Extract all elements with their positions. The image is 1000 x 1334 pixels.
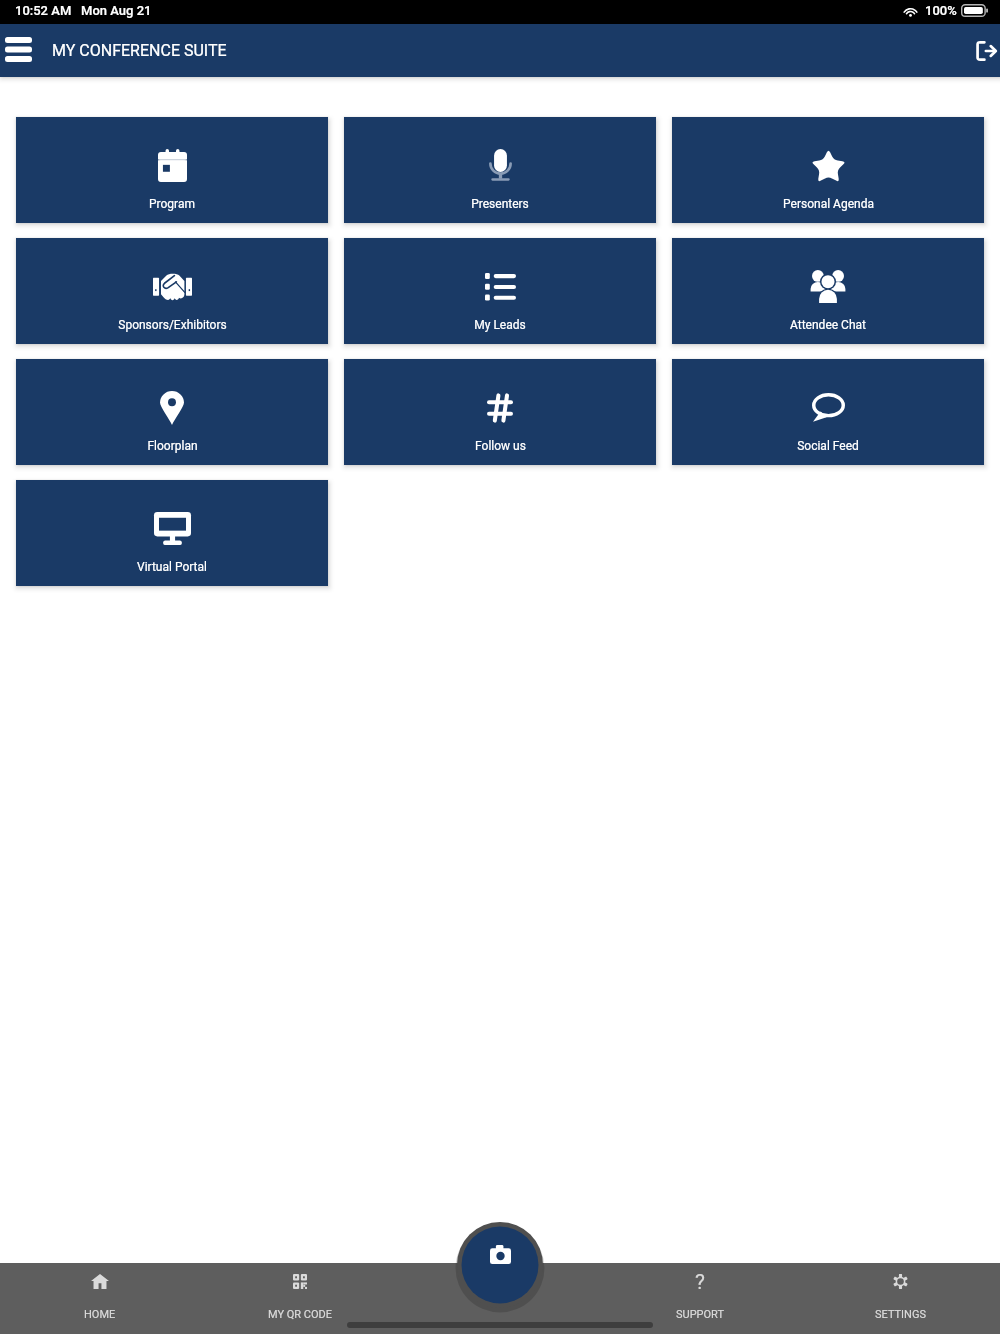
staticText: Virtual Portal: [137, 560, 207, 574]
staticText: 100%: [925, 3, 957, 18]
staticText: HOME: [84, 1308, 116, 1321]
staticText: Floorplan: [147, 439, 198, 453]
button[interactable]: Virtual Portal: [16, 480, 328, 586]
button[interactable]: Follow us: [344, 359, 656, 465]
button[interactable]: Floorplan: [16, 359, 328, 465]
staticText: Social Feed: [797, 439, 859, 453]
button[interactable]: HOME: [0, 1263, 200, 1334]
staticText: Presenters: [471, 197, 529, 211]
staticText: SETTINGS: [875, 1308, 926, 1321]
button[interactable]: SETTINGS: [800, 1263, 1000, 1334]
button[interactable]: Program: [16, 117, 328, 223]
button[interactable]: My Leads: [344, 238, 656, 344]
button[interactable]: MY QR CODE: [200, 1263, 400, 1334]
staticText: My Leads: [474, 318, 526, 332]
staticText: MY CONFERENCE SUITE: [52, 41, 227, 60]
staticText: 10:52 AM: [15, 3, 72, 18]
staticText: Sponsors/Exhibitors: [118, 318, 227, 332]
staticText: Attendee Chat: [790, 318, 866, 332]
button[interactable]: Attendee Chat: [672, 238, 984, 344]
staticText: Personal Agenda: [783, 197, 874, 211]
staticText: SUPPORT: [676, 1308, 725, 1321]
button[interactable]: Presenters: [344, 117, 656, 223]
staticText: MY QR CODE: [268, 1308, 333, 1321]
button[interactable]: Sponsors/Exhibitors: [16, 238, 328, 344]
button[interactable]: Personal Agenda: [672, 117, 984, 223]
button[interactable]: Scan with camera: [454, 1219, 546, 1290]
staticText: Program: [149, 197, 195, 211]
button[interactable]: Log out: [956, 27, 1000, 75]
staticText: Mon Aug 21: [81, 3, 152, 18]
button[interactable]: Open navigation menu: [0, 27, 37, 75]
staticText: Follow us: [475, 439, 526, 453]
button[interactable]: Social Feed: [672, 359, 984, 465]
staticText: ?: [695, 1270, 705, 1295]
button[interactable]: ?: [600, 1263, 800, 1334]
